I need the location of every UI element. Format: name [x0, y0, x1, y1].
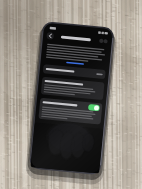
button[interactable]: Photo of phone showing settings screen — [0, 0, 142, 189]
